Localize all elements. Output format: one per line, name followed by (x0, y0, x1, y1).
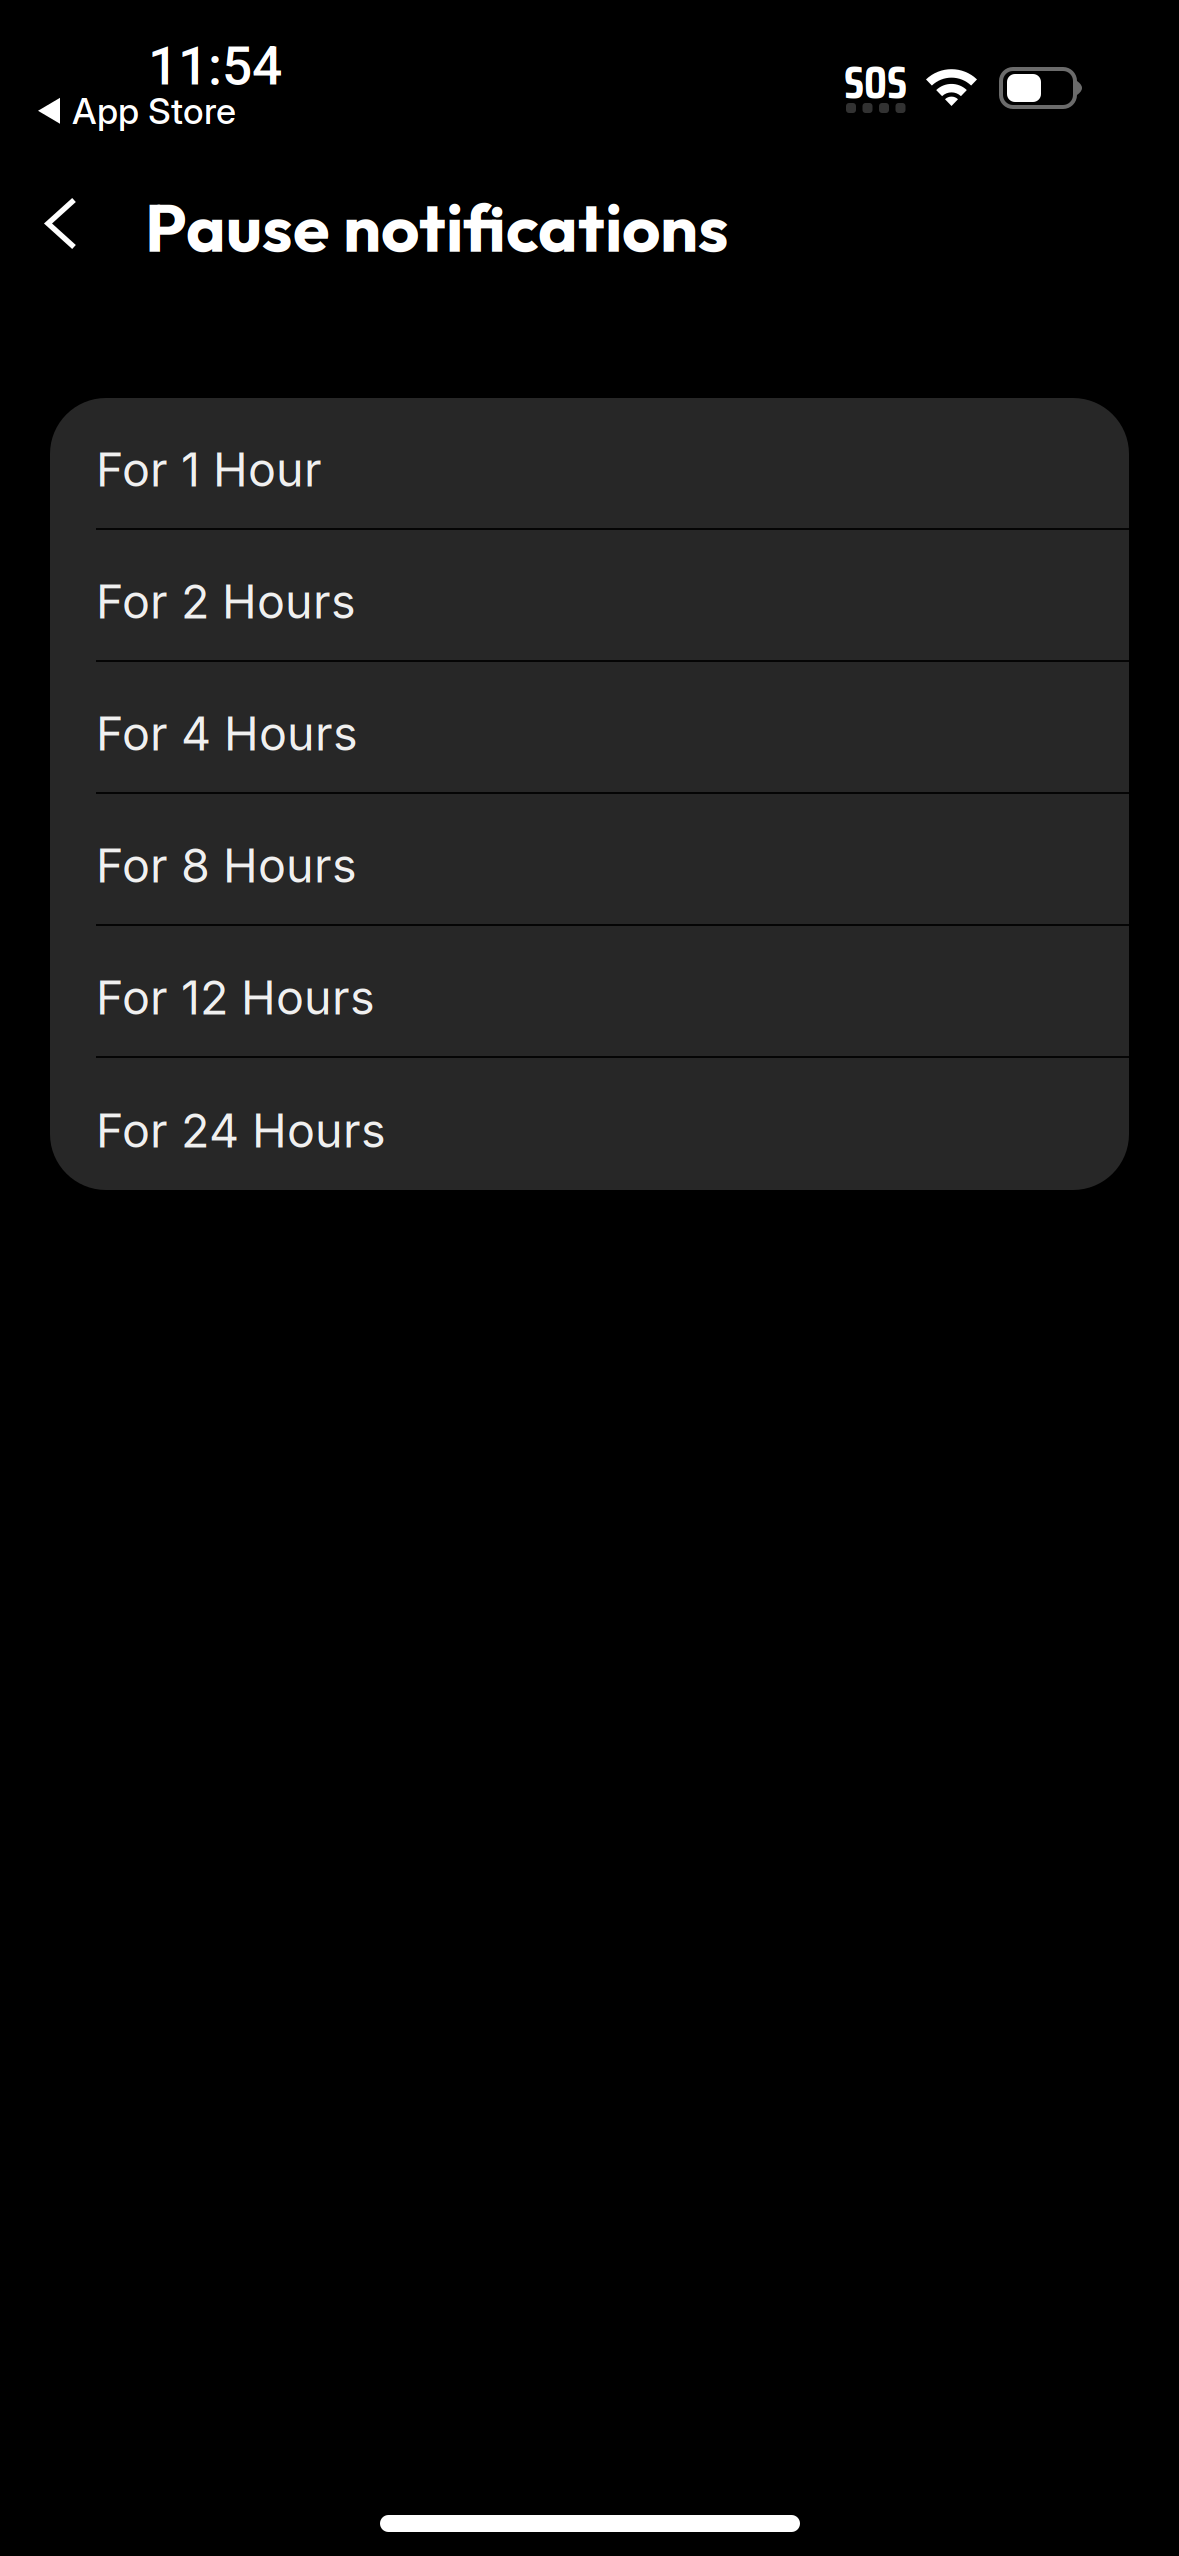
staticText: For 24 Hours (96, 1102, 386, 1159)
button[interactable]: For 2 Hours (50, 530, 1129, 662)
button[interactable]: For 1 Hour (50, 398, 1129, 530)
staticText: Pause notifications (145, 185, 729, 269)
button[interactable]: For 24 Hours (50, 1058, 1129, 1190)
staticText: 11:54 (148, 35, 282, 97)
button[interactable]: For 12 Hours (50, 926, 1129, 1058)
button[interactable]: For 4 Hours (50, 662, 1129, 794)
staticText: For 1 Hour (96, 441, 322, 498)
staticText: For 2 Hours (96, 573, 356, 630)
button[interactable]: Back (16, 166, 106, 281)
staticText: SOS (844, 47, 907, 118)
staticText: App Store (72, 89, 236, 133)
staticText: For 4 Hours (96, 705, 358, 762)
staticText: For 12 Hours (96, 969, 375, 1026)
staticText: For 8 Hours (96, 837, 357, 894)
button[interactable]: For 8 Hours (50, 794, 1129, 926)
